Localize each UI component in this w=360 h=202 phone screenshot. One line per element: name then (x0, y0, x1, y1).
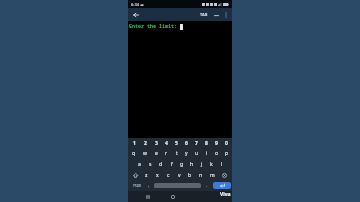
button[interactable]: l (217, 159, 226, 169)
button[interactable]: f (167, 159, 176, 169)
button[interactable]: n (196, 170, 206, 180)
staticText: , (148, 182, 150, 189)
button[interactable]: Back (130, 9, 141, 20)
staticText: k (210, 161, 213, 168)
button[interactable]: Shift (129, 170, 141, 180)
button[interactable]: More options (221, 9, 230, 20)
button[interactable]: 4 (162, 139, 171, 147)
button[interactable]: o (212, 148, 221, 158)
staticText: 4 (165, 140, 168, 147)
staticText: b (188, 172, 192, 179)
button[interactable]: x (152, 170, 162, 180)
staticText: v (178, 172, 181, 179)
button[interactable]: a (134, 159, 144, 169)
button[interactable]: m (207, 170, 217, 180)
staticText: s (149, 161, 152, 168)
staticText: 8 (205, 140, 208, 147)
staticText: m (210, 172, 215, 179)
staticText: p (225, 150, 229, 157)
button[interactable]: e (151, 148, 161, 158)
button[interactable]: q (129, 148, 139, 158)
staticText: c (167, 172, 170, 179)
staticText: Enter the limit: (129, 23, 178, 30)
staticText: w (143, 150, 147, 157)
staticText: r (165, 150, 168, 157)
button[interactable]: 0 (222, 139, 231, 147)
staticText: 1 (133, 140, 136, 147)
button[interactable]: 3 (151, 139, 161, 147)
button[interactable]: Home (167, 191, 178, 202)
staticText: ?123 (133, 183, 141, 188)
staticText: 0 (225, 140, 228, 147)
staticText: 7 (195, 140, 198, 147)
staticText: y (185, 150, 188, 157)
button[interactable]: c (163, 170, 173, 180)
staticText: TAB (200, 12, 208, 17)
staticText: d (159, 161, 163, 168)
staticText: o (215, 150, 219, 157)
staticText: . (206, 182, 208, 189)
button[interactable]: y (182, 148, 191, 158)
button[interactable]: TAB (197, 9, 211, 20)
button[interactable]: Backspace (218, 170, 231, 180)
button[interactable]: . (202, 181, 212, 190)
button[interactable]: t (172, 148, 181, 158)
button[interactable]: j (197, 159, 206, 169)
staticText: g (180, 161, 184, 168)
staticText: f (171, 161, 173, 168)
staticText: Viva (220, 191, 231, 198)
staticText: x (156, 172, 159, 179)
staticText: t (176, 150, 178, 157)
staticText: e (155, 150, 158, 157)
button[interactable]: r (162, 148, 171, 158)
button[interactable]: 6 (182, 139, 191, 147)
button[interactable]: w (140, 148, 150, 158)
button[interactable]: z (142, 170, 151, 180)
staticText: i (206, 150, 208, 157)
button[interactable]: d (156, 159, 166, 169)
button[interactable]: Minimize (211, 9, 221, 20)
staticText: l (221, 161, 223, 168)
button[interactable]: 8 (202, 139, 211, 147)
button[interactable]: 5 (172, 139, 181, 147)
button[interactable]: Enter (213, 182, 231, 189)
button[interactable]: k (207, 159, 216, 169)
button[interactable]: 9 (212, 139, 221, 147)
staticText: 6 (185, 140, 188, 147)
staticText: u (195, 150, 199, 157)
button[interactable]: ?123 (129, 181, 144, 190)
staticText: 5 (175, 140, 178, 147)
staticText: 3 (155, 140, 158, 147)
staticText: 9 (215, 140, 218, 147)
staticText: q (132, 150, 136, 157)
button[interactable]: Recents (142, 191, 153, 202)
button[interactable]: i (202, 148, 211, 158)
button[interactable]: 1 (129, 139, 139, 147)
button[interactable]: v (174, 170, 184, 180)
staticText: a (138, 161, 141, 168)
button[interactable]: b (185, 170, 195, 180)
staticText: 6:34 (131, 2, 139, 7)
staticText: z (145, 172, 148, 179)
button[interactable]: 7 (192, 139, 201, 147)
staticText: j (201, 161, 203, 168)
button[interactable]: Enter the limit: (128, 21, 232, 138)
staticText: 2 (144, 140, 147, 147)
button[interactable]: Space (154, 183, 201, 188)
button[interactable]: g (177, 159, 186, 169)
button[interactable]: 2 (140, 139, 150, 147)
staticText: n (199, 172, 203, 179)
button[interactable]: s (145, 159, 155, 169)
staticText: h (190, 161, 194, 168)
button[interactable]: , (145, 181, 153, 190)
button[interactable]: u (192, 148, 201, 158)
button[interactable]: p (222, 148, 231, 158)
button[interactable]: h (187, 159, 196, 169)
